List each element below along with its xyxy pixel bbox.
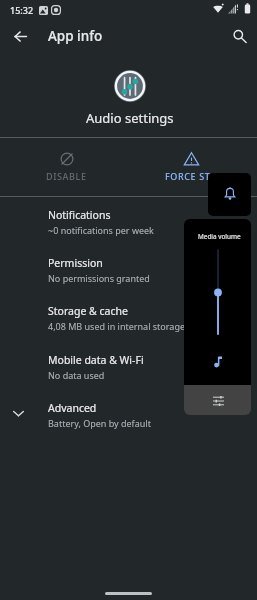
staticText: FORCE STOP	[165, 170, 224, 182]
button[interactable]: Volume settings	[184, 385, 251, 415]
staticText: 4,08 MB used in internal storage	[48, 320, 185, 332]
staticText: Audio settings	[86, 109, 174, 127]
staticText: Advanced	[48, 401, 97, 415]
button[interactable]: FORCE STOP	[128, 138, 257, 196]
button[interactable]: Advanced	[0, 394, 257, 438]
staticText: 15:32	[10, 4, 34, 16]
button[interactable]: DISABLE	[0, 138, 129, 196]
button[interactable]: Mobile data & Wi-Fi	[0, 346, 257, 390]
staticText: Notifications	[48, 208, 111, 222]
staticText: DISABLE	[46, 170, 87, 182]
staticText: App info	[48, 27, 103, 45]
staticText: ~0 notifications per week	[48, 224, 154, 236]
staticText: No data used	[48, 369, 105, 381]
button[interactable]: Search	[224, 24, 250, 48]
staticText: No permissions granted	[48, 272, 150, 284]
button[interactable]: Back	[7, 24, 33, 48]
button[interactable]: Notifications	[0, 201, 257, 245]
staticText: Permission	[48, 256, 103, 270]
button[interactable]: Permission	[0, 249, 257, 293]
staticText: Storage & cache	[48, 304, 128, 318]
staticText: Media volume	[198, 232, 241, 241]
button[interactable]: Storage & cache	[0, 297, 257, 341]
button[interactable]: Ringer mode	[208, 173, 251, 216]
staticText: Mobile data & Wi-Fi	[48, 353, 144, 367]
staticText: Battery, Open by default	[48, 417, 151, 429]
